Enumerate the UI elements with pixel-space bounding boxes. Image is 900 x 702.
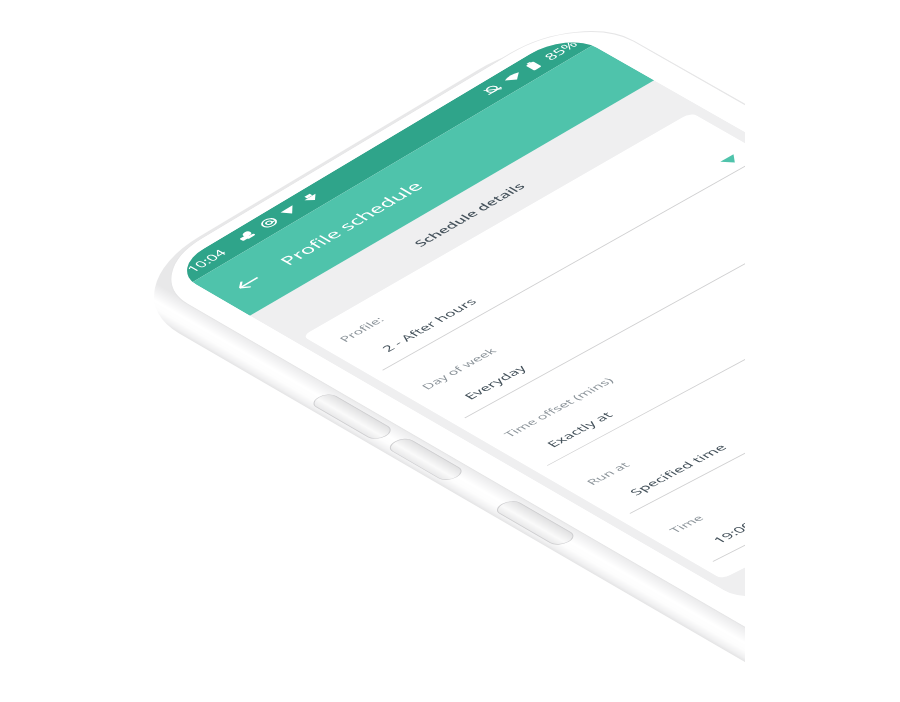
button[interactable]: Day of week	[8, 250, 352, 349]
button[interactable]: Profile:	[8, 151, 352, 250]
button[interactable]: Time offset (mins)	[8, 349, 352, 448]
